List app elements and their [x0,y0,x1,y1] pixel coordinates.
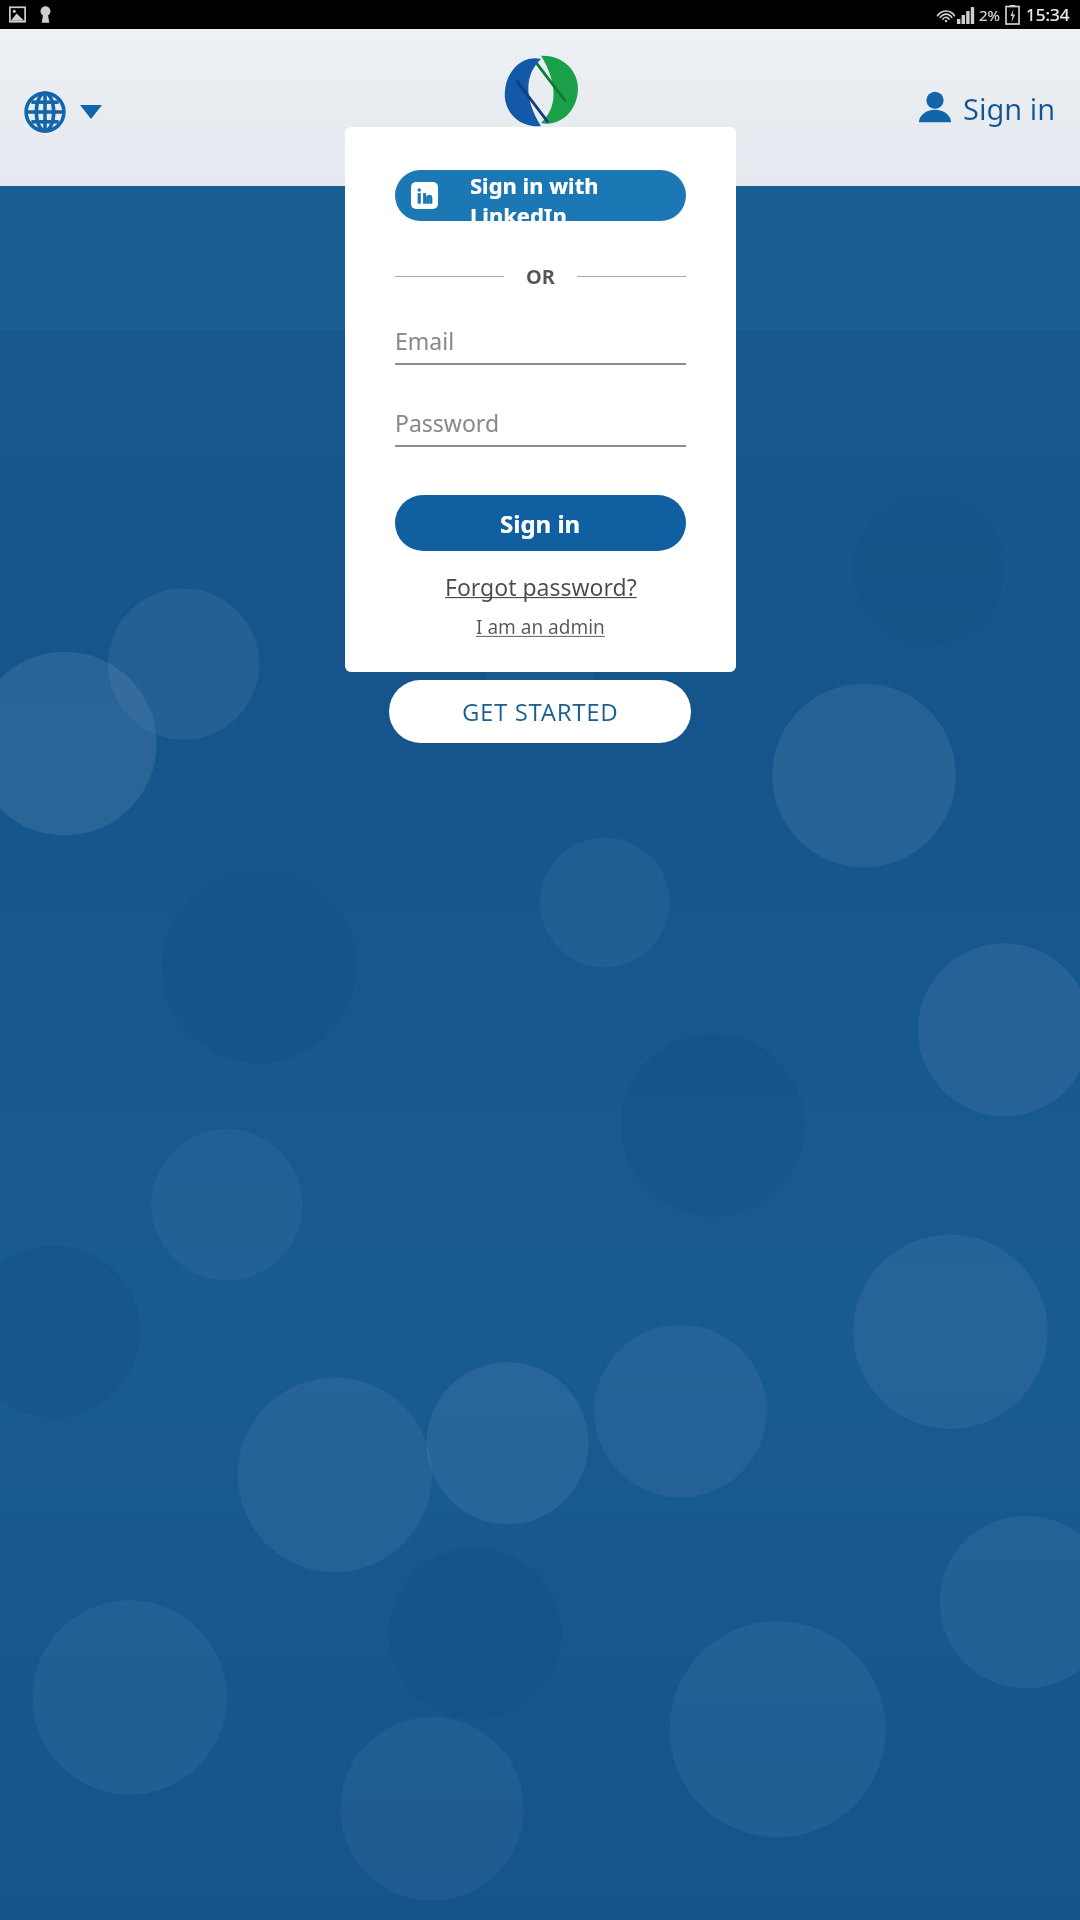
staticText: GET STARTED [462,695,619,728]
staticText: Sign in [500,507,581,540]
button[interactable]: Email [395,325,686,365]
button[interactable]: Password [395,407,686,447]
button[interactable]: Sign in [395,495,686,551]
staticText: Sign in with LinkedIn [470,170,686,221]
staticText: Email [395,325,455,356]
staticText: OR [526,263,555,290]
staticText: Password [395,407,500,438]
button[interactable]: GET STARTED [389,680,691,743]
button[interactable]: Select language [18,85,108,139]
button[interactable]: Sign in [911,85,1060,132]
staticText: Schulich [476,131,605,173]
button[interactable]: Sign in with LinkedIn [395,170,686,221]
button[interactable]: I am an admin [472,610,609,644]
staticText: Sign in [963,89,1056,128]
button[interactable]: Forgot password? [441,567,641,606]
staticText: 2% [979,5,1001,25]
staticText: 15:34 [1026,3,1070,26]
staticText: Connect [0,575,1080,659]
